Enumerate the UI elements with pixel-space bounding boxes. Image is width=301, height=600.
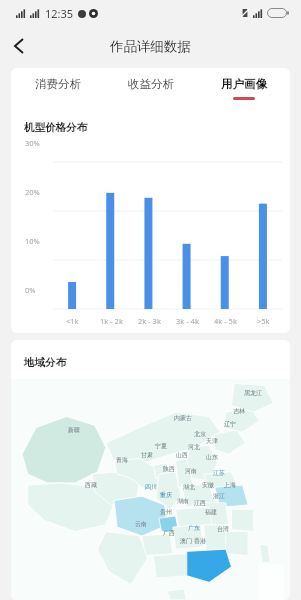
staticText: 甘肃 (141, 451, 153, 459)
staticText: 四川 (145, 483, 157, 491)
staticText: 北京 (194, 430, 206, 438)
staticText: 澳门 (180, 537, 192, 545)
staticText: 地域分布 (24, 356, 66, 369)
staticText: 云南 (135, 520, 147, 528)
staticText: 福建 (205, 508, 217, 516)
staticText: 内蒙古 (174, 414, 192, 422)
staticText: 10% (25, 236, 40, 246)
staticText: 广西 (163, 529, 175, 537)
staticText: 陕西 (163, 465, 175, 473)
staticText: 30% (25, 138, 40, 148)
staticText: 重庆 (160, 491, 172, 499)
staticText: 收益分析 (128, 77, 174, 91)
staticText: 青海 (116, 456, 128, 464)
staticText: 12:35 (45, 6, 74, 21)
staticText: 2k - 3k (138, 316, 161, 326)
staticText: 上海 (224, 481, 236, 489)
staticText: 0% (25, 285, 36, 295)
staticText: 20% (25, 187, 40, 197)
staticText: 消费分析 (35, 77, 81, 91)
button[interactable]: 消费分析 (11, 68, 104, 109)
staticText: 湖南 (177, 497, 189, 505)
staticText: 安徽 (202, 481, 214, 489)
staticText: 宁夏 (155, 442, 167, 450)
staticText: 山西 (176, 451, 188, 459)
staticText: 天津 (206, 437, 218, 445)
staticText: 机型价格分布 (24, 121, 87, 134)
staticText: 作品详细数据 (110, 38, 191, 55)
staticText: 香港 (194, 537, 206, 545)
button[interactable]: Back (5, 32, 33, 60)
staticText: 辽宁 (224, 420, 236, 428)
staticText: 江西 (194, 499, 206, 507)
staticText: 用户画像 (221, 77, 267, 91)
staticText: 吉林 (233, 407, 245, 415)
staticText: >5k (257, 316, 270, 326)
button[interactable]: 用户画像 (197, 68, 290, 109)
staticText: 3k - 4k (176, 316, 199, 326)
staticText: 浙江 (213, 492, 225, 500)
staticText: 新疆 (68, 426, 80, 434)
staticText: 4k - 5k (214, 316, 237, 326)
staticText: 河北 (188, 443, 200, 451)
staticText: <1k (66, 316, 79, 326)
staticText: 1k - 2k (100, 316, 123, 326)
staticText: 广东 (188, 524, 200, 532)
staticText: 山东 (206, 453, 218, 461)
staticText: 西藏 (85, 481, 97, 489)
staticText: 台湾 (217, 525, 229, 533)
staticText: 江苏 (213, 469, 225, 477)
staticText: 贵州 (160, 508, 172, 516)
staticText: 湖北 (183, 483, 195, 491)
staticText: 河南 (185, 467, 197, 475)
staticText: 黑龙江 (244, 389, 262, 397)
button[interactable]: 收益分析 (104, 68, 197, 109)
